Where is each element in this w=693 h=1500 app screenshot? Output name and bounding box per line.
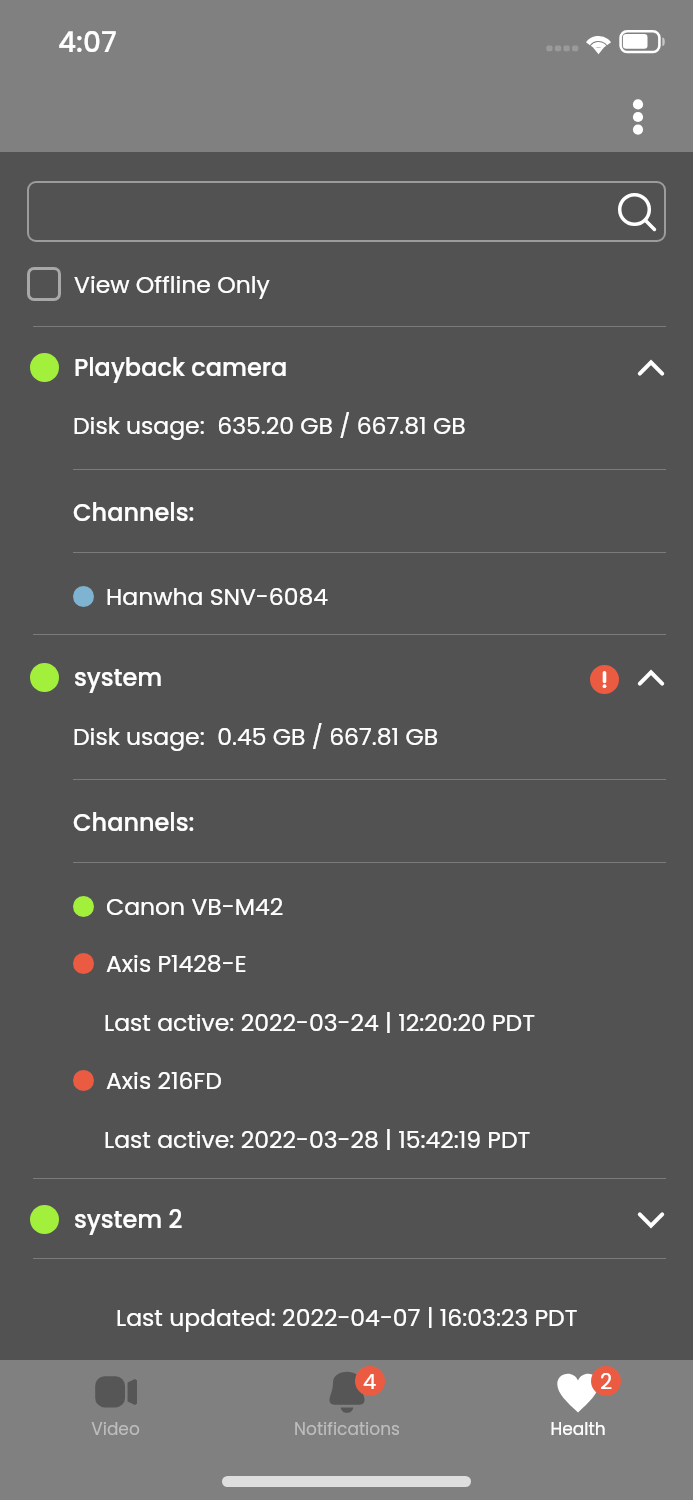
staticText: Disk usage: 0.45 GB / 667.81 GB bbox=[73, 720, 439, 753]
button[interactable]: View Offline Only bbox=[0, 242, 693, 326]
button[interactable]: Hanwha SNV-6084 bbox=[0, 568, 693, 625]
staticText: Video bbox=[91, 1417, 140, 1441]
staticText: Axis 216FD bbox=[106, 1064, 222, 1097]
button[interactable]: More options bbox=[614, 93, 662, 141]
button[interactable]: Playback camera bbox=[0, 327, 693, 408]
staticText: 2 bbox=[600, 1367, 613, 1396]
staticText: Canon VB-M42 bbox=[106, 890, 284, 923]
button[interactable]: system bbox=[0, 635, 693, 716]
button[interactable]: Search bbox=[27, 181, 666, 242]
staticText: Notifications bbox=[294, 1417, 400, 1441]
staticText: system bbox=[74, 661, 163, 695]
staticText: Channels: bbox=[73, 496, 195, 530]
staticText: 4:07 bbox=[58, 23, 117, 62]
other: Error bbox=[590, 665, 619, 694]
staticText: Playback camera bbox=[74, 351, 288, 385]
button[interactable]: Canon VB-M42 bbox=[0, 878, 693, 935]
button[interactable]: Axis P1428-E bbox=[0, 935, 693, 1052]
staticText: Health bbox=[550, 1417, 606, 1441]
button[interactable]: Axis 216FD bbox=[0, 1052, 693, 1169]
staticText: Axis P1428-E bbox=[106, 947, 247, 980]
staticText: View Offline Only bbox=[74, 268, 270, 301]
staticText: Last updated: 2022-04-07 | 16:03:23 PDT bbox=[116, 1301, 578, 1334]
staticText: Channels: bbox=[73, 806, 195, 840]
staticText: system 2 bbox=[74, 1203, 183, 1237]
button[interactable]: 4 bbox=[231, 1360, 462, 1500]
button[interactable]: 2 bbox=[462, 1360, 693, 1500]
staticText: Last active: 2022-03-28 | 15:42:19 PDT bbox=[104, 1123, 531, 1156]
staticText: 4 bbox=[363, 1367, 377, 1396]
staticText: Hanwha SNV-6084 bbox=[106, 580, 329, 613]
button[interactable]: Video bbox=[0, 1360, 231, 1500]
staticText: Disk usage: 635.20 GB / 667.81 GB bbox=[73, 409, 466, 442]
staticText: Last active: 2022-03-24 | 12:20:20 PDT bbox=[104, 1006, 535, 1039]
button[interactable]: system 2 bbox=[0, 1179, 693, 1258]
